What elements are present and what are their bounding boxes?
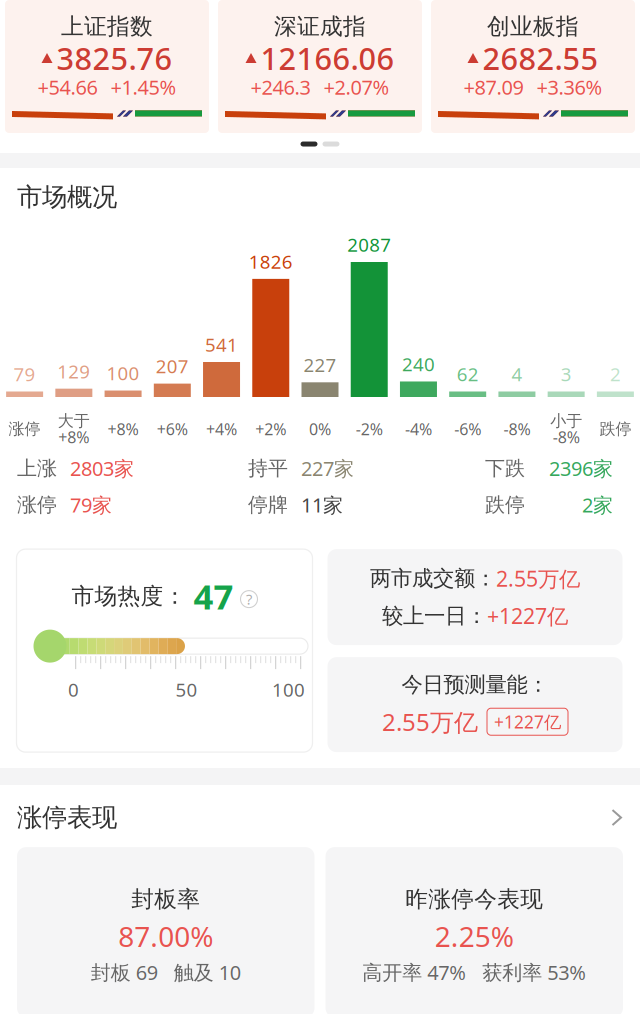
- staticText: 跌停: [599, 419, 631, 439]
- staticText: 227家: [301, 455, 354, 482]
- staticText: 创业板指: [487, 13, 579, 40]
- staticText: +6%: [157, 418, 188, 440]
- staticText: 高开率 47%: [362, 959, 466, 985]
- staticText: +4%: [206, 418, 237, 440]
- staticText: 12166.06: [260, 38, 394, 78]
- staticText: 停牌: [248, 493, 288, 517]
- staticText: +8%: [58, 426, 89, 448]
- staticText: 207: [156, 354, 189, 378]
- staticText: 触及 10: [174, 959, 241, 985]
- staticText: 2.55万亿: [496, 564, 580, 593]
- staticText: 上涨: [17, 456, 57, 481]
- staticText: +54.66: [37, 74, 97, 100]
- staticText: 获利率 53%: [482, 959, 586, 985]
- staticText: 跌停: [485, 493, 525, 517]
- staticText: 较上一日：: [382, 603, 487, 629]
- staticText: 涨停表现: [17, 802, 117, 833]
- staticText: 100: [107, 361, 140, 385]
- staticText: 0: [68, 677, 79, 702]
- staticText: 227: [303, 352, 336, 377]
- staticText: 87.00%: [118, 917, 213, 955]
- staticText: -4%: [405, 418, 432, 440]
- staticText: 2396家: [549, 455, 613, 482]
- staticText: 两市成交额：: [370, 565, 496, 592]
- staticText: 3825.76: [56, 38, 172, 78]
- staticText: 封板率: [131, 885, 200, 913]
- staticText: 2家: [582, 492, 613, 518]
- staticText: +1227亿: [487, 602, 568, 630]
- staticText: 541: [205, 332, 238, 357]
- staticText: +87.09: [463, 74, 523, 100]
- button[interactable]: 深证成指: [218, 0, 422, 133]
- staticText: 2.55万亿: [382, 706, 478, 738]
- button[interactable]: 创业板指: [431, 0, 635, 133]
- staticText: 小于: [550, 411, 582, 431]
- staticText: 2087: [347, 232, 391, 257]
- staticText: +3.36%: [536, 74, 602, 100]
- staticText: 涨停: [9, 419, 41, 439]
- staticText: 市场概况: [17, 181, 117, 212]
- staticText: 100: [272, 677, 305, 702]
- staticText: 79: [14, 362, 36, 386]
- staticText: 2.25%: [435, 917, 514, 955]
- staticText: 2803家: [70, 455, 134, 482]
- staticText: 62: [457, 362, 479, 386]
- staticText: +2%: [255, 418, 286, 440]
- staticText: 上证指数: [61, 13, 153, 40]
- staticText: -2%: [356, 418, 383, 440]
- staticText: 0%: [309, 418, 331, 440]
- staticText: 市场热度：: [71, 582, 186, 610]
- staticText: 2: [610, 362, 621, 386]
- staticText: -8%: [553, 426, 580, 448]
- staticText: 涨停: [17, 493, 57, 517]
- staticText: +1227亿: [494, 710, 561, 733]
- staticText: +8%: [108, 418, 139, 440]
- staticText: 持平: [248, 456, 288, 481]
- staticText: +2.07%: [323, 74, 389, 100]
- staticText: 2682.55: [482, 38, 598, 78]
- staticText: 79家: [70, 492, 112, 518]
- staticText: 240: [402, 352, 435, 376]
- staticText: 大于: [58, 411, 90, 431]
- staticText: 下跌: [485, 456, 525, 481]
- staticText: 3: [561, 362, 572, 386]
- staticText: -8%: [503, 418, 530, 440]
- staticText: 50: [175, 677, 197, 702]
- staticText: -6%: [454, 418, 481, 440]
- staticText: 深证成指: [274, 13, 366, 40]
- staticText: ?: [246, 589, 252, 609]
- button[interactable]: 上证指数: [5, 0, 209, 133]
- staticText: 1826: [249, 249, 293, 274]
- staticText: +246.3: [250, 74, 310, 100]
- staticText: +1.45%: [110, 74, 176, 100]
- staticText: 昨涨停今表现: [405, 885, 543, 913]
- button[interactable]: 涨停表现: [0, 785, 640, 847]
- staticText: 封板 69: [91, 959, 158, 985]
- staticText: 11家: [301, 492, 343, 518]
- staticText: 4: [511, 362, 522, 386]
- staticText: 47: [193, 573, 233, 619]
- staticText: 129: [57, 359, 90, 384]
- staticText: 今日预测量能：: [401, 672, 548, 698]
